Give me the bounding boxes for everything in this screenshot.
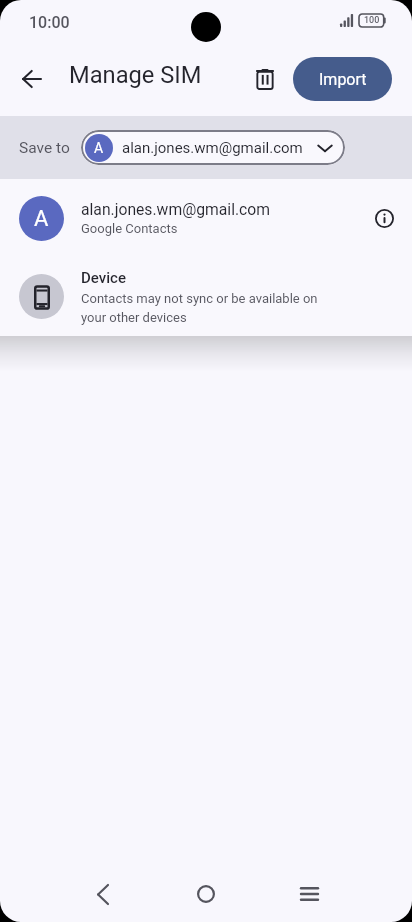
staticText: A [34, 206, 49, 232]
staticText: Contacts may not sync or be available on… [81, 291, 333, 325]
button[interactable]: Info [364, 198, 404, 238]
button[interactable]: Import [293, 57, 392, 101]
staticText: Import [319, 70, 367, 89]
button[interactable]: A [0, 179, 412, 257]
staticText: Google Contacts [81, 221, 178, 236]
button[interactable]: A [81, 130, 345, 165]
staticText: A [94, 140, 104, 156]
button[interactable]: Home [182, 870, 230, 918]
staticText: 100 [364, 15, 380, 26]
staticText: alan.jones.wm@gmail.com [81, 200, 271, 218]
staticText: Device [81, 269, 126, 287]
button[interactable]: Recent apps [285, 870, 333, 918]
staticText: 10:00 [29, 13, 70, 32]
staticText: Manage SIM [69, 61, 202, 89]
button[interactable]: Back [12, 59, 52, 99]
staticText: Save to [19, 139, 70, 157]
button[interactable]: Delete [245, 59, 285, 99]
staticText: alan.jones.wm@gmail.com [122, 139, 303, 157]
button[interactable]: Device [0, 257, 412, 336]
button[interactable]: Back [78, 870, 126, 918]
